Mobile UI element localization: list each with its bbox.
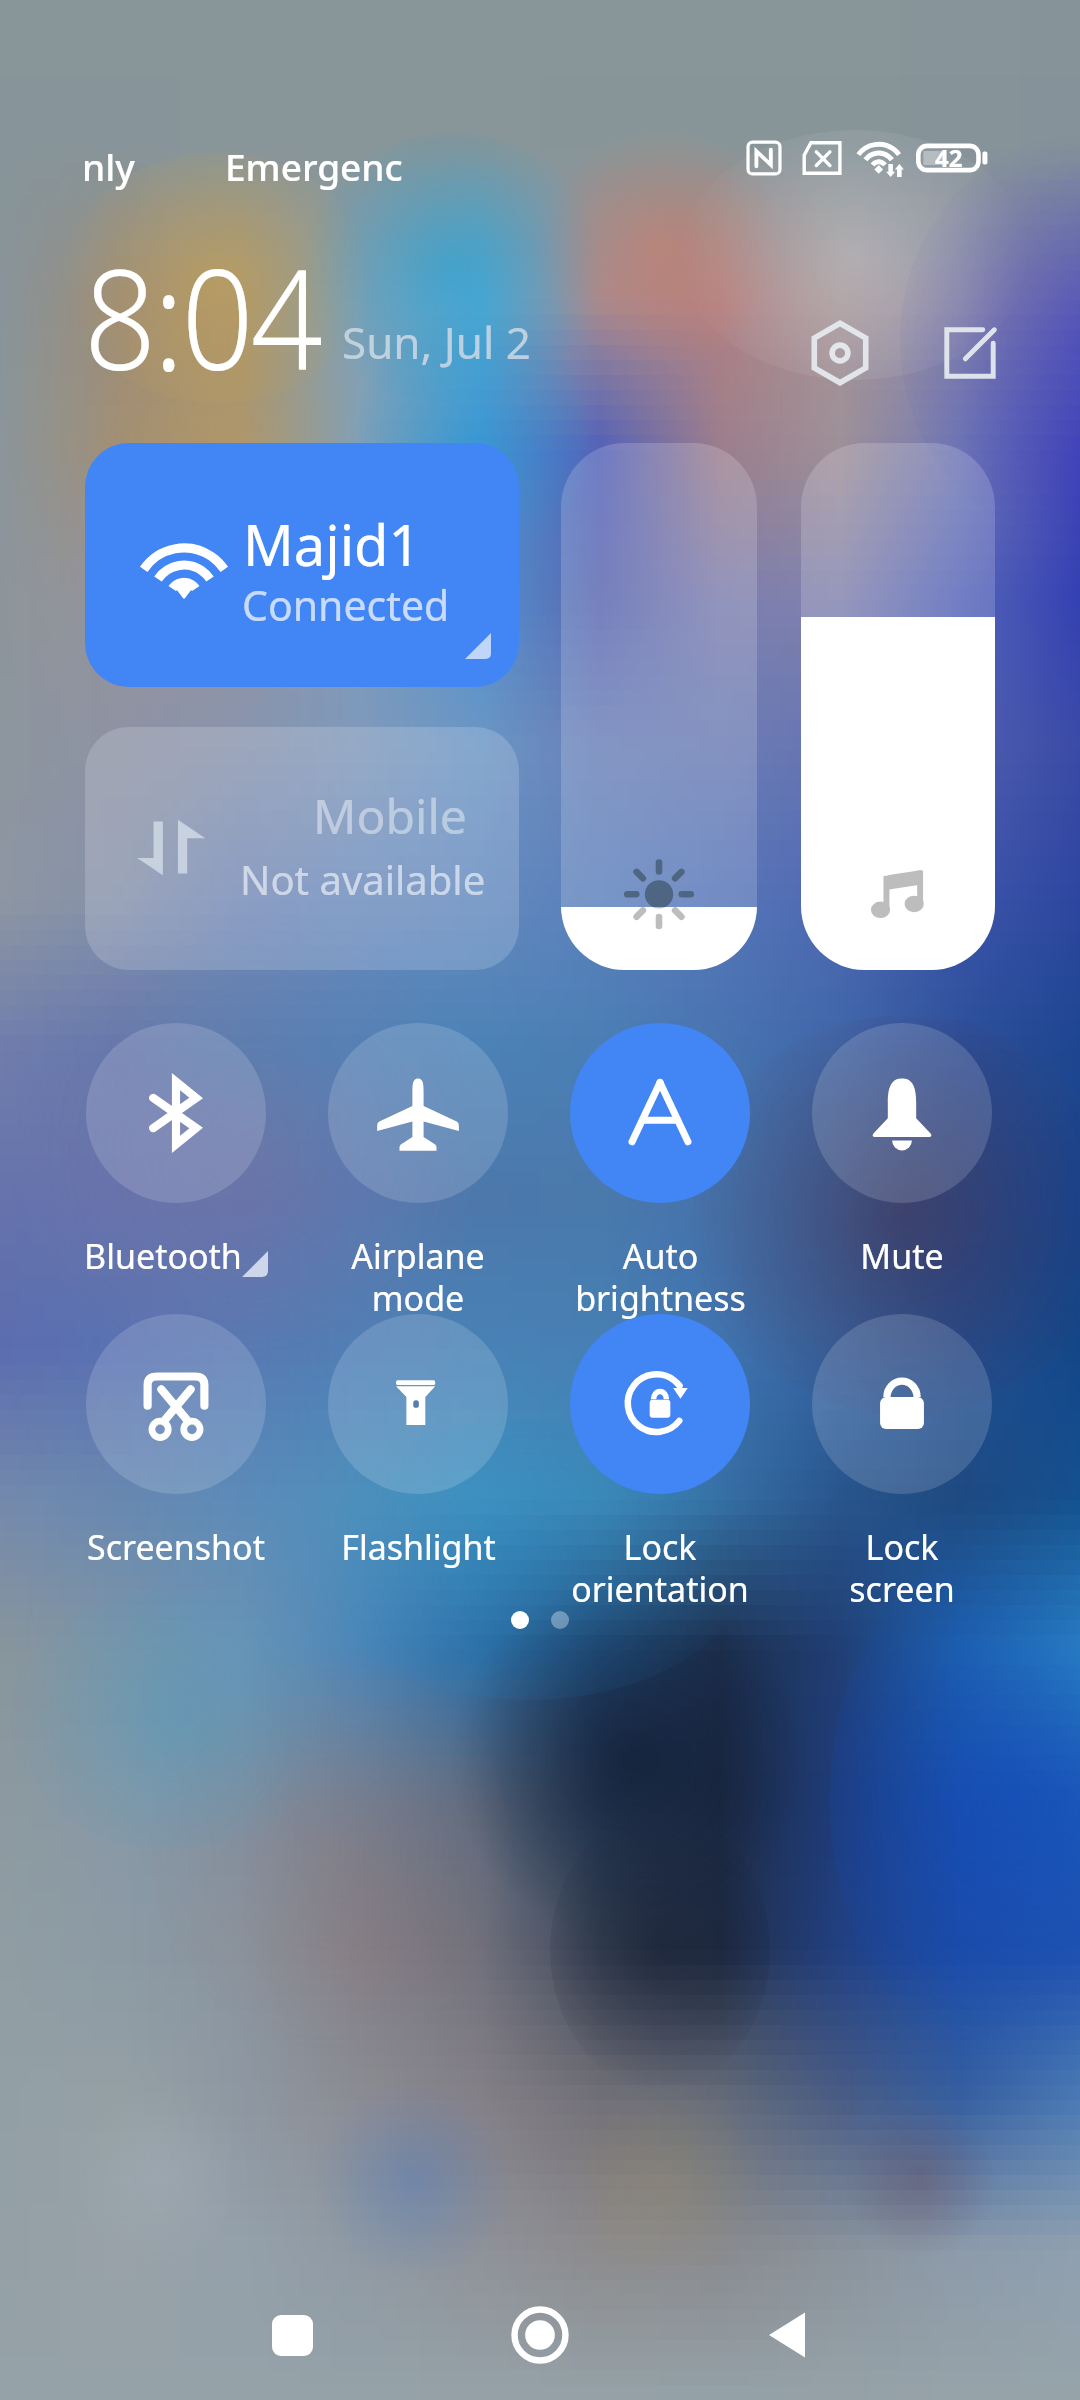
button[interactable]: Airplane mode <box>297 1023 539 1321</box>
staticText: 42 <box>935 141 963 174</box>
staticText: Emergenc <box>225 141 403 191</box>
staticText: Majid1 <box>243 506 421 582</box>
button[interactable]: Recents <box>237 2280 347 2390</box>
button[interactable]: Home <box>485 2280 595 2390</box>
staticText: Screenshot <box>87 1524 265 1570</box>
staticText: Flashlight <box>341 1524 496 1570</box>
button[interactable]: Slider <box>561 443 757 970</box>
button[interactable]: Mobile data <box>85 727 519 970</box>
button[interactable]: Mute <box>781 1023 1023 1279</box>
button[interactable]: Settings <box>800 313 880 393</box>
button[interactable]: Bluetooth <box>55 1023 297 1279</box>
button[interactable]: Slider <box>801 443 995 970</box>
button[interactable]: Screenshot <box>55 1314 297 1570</box>
staticText: Auto brightness <box>575 1233 746 1321</box>
staticText: Airplane mode <box>351 1233 485 1321</box>
button[interactable]: Lock screen <box>781 1314 1023 1612</box>
staticText: Not available <box>240 852 486 906</box>
button[interactable]: Back <box>732 2280 842 2390</box>
staticText: Mobile data <box>313 783 519 848</box>
button[interactable]: Lock orientation <box>539 1314 781 1612</box>
button[interactable]: Auto brightness <box>539 1023 781 1321</box>
staticText: Lock orientation <box>571 1524 749 1612</box>
button[interactable]: Flashlight <box>297 1314 539 1570</box>
staticText: Mute <box>860 1233 944 1279</box>
button[interactable]: Edit <box>930 313 1010 393</box>
button[interactable]: Majid1 <box>85 443 519 687</box>
staticText: 8:04 <box>84 222 321 382</box>
staticText: Lock screen <box>849 1524 955 1612</box>
staticText: Bluetooth <box>84 1233 242 1279</box>
staticText: Connected <box>242 577 450 633</box>
staticText: Sun, Jul 2 <box>342 312 531 372</box>
staticText: nly <box>82 141 135 191</box>
